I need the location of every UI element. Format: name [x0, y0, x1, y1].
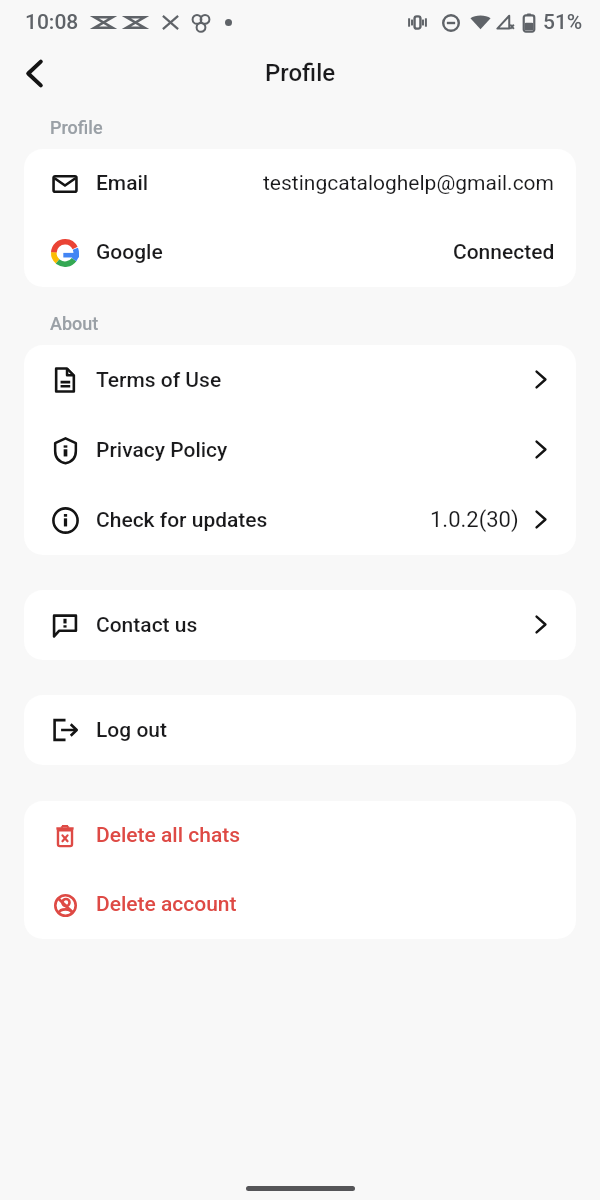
staticText: Privacy Policy — [96, 438, 228, 463]
staticText: Log out — [96, 718, 167, 743]
staticText: Check for updates — [96, 508, 268, 533]
staticText: Delete account — [96, 892, 237, 917]
staticText: Email — [96, 171, 149, 196]
button[interactable]: Back — [10, 49, 58, 97]
button[interactable]: Terms of Use — [24, 345, 576, 415]
staticText: 51% — [543, 10, 583, 35]
staticText: Terms of Use — [96, 368, 222, 393]
button[interactable]: Log out — [24, 695, 576, 765]
staticText: Connected — [453, 240, 555, 265]
staticText: 1.0.2(30) — [430, 507, 519, 533]
button[interactable]: Delete all chats — [24, 801, 576, 870]
button[interactable]: Privacy Policy — [24, 415, 576, 485]
button[interactable]: Contact us — [24, 590, 576, 660]
button[interactable]: Check for updates — [24, 485, 576, 555]
staticText: 10:08 — [25, 10, 79, 35]
button[interactable]: Email — [24, 149, 576, 218]
staticText: About — [50, 313, 99, 334]
staticText: Profile — [50, 117, 103, 138]
staticText: Profile — [265, 59, 336, 87]
staticText: Google — [96, 240, 163, 265]
staticText: Delete all chats — [96, 823, 241, 848]
button[interactable]: Google — [24, 218, 576, 287]
staticText: Contact us — [96, 613, 198, 638]
button[interactable]: Delete account — [24, 870, 576, 939]
staticText: testingcataloghelp@gmail.com — [263, 171, 555, 196]
